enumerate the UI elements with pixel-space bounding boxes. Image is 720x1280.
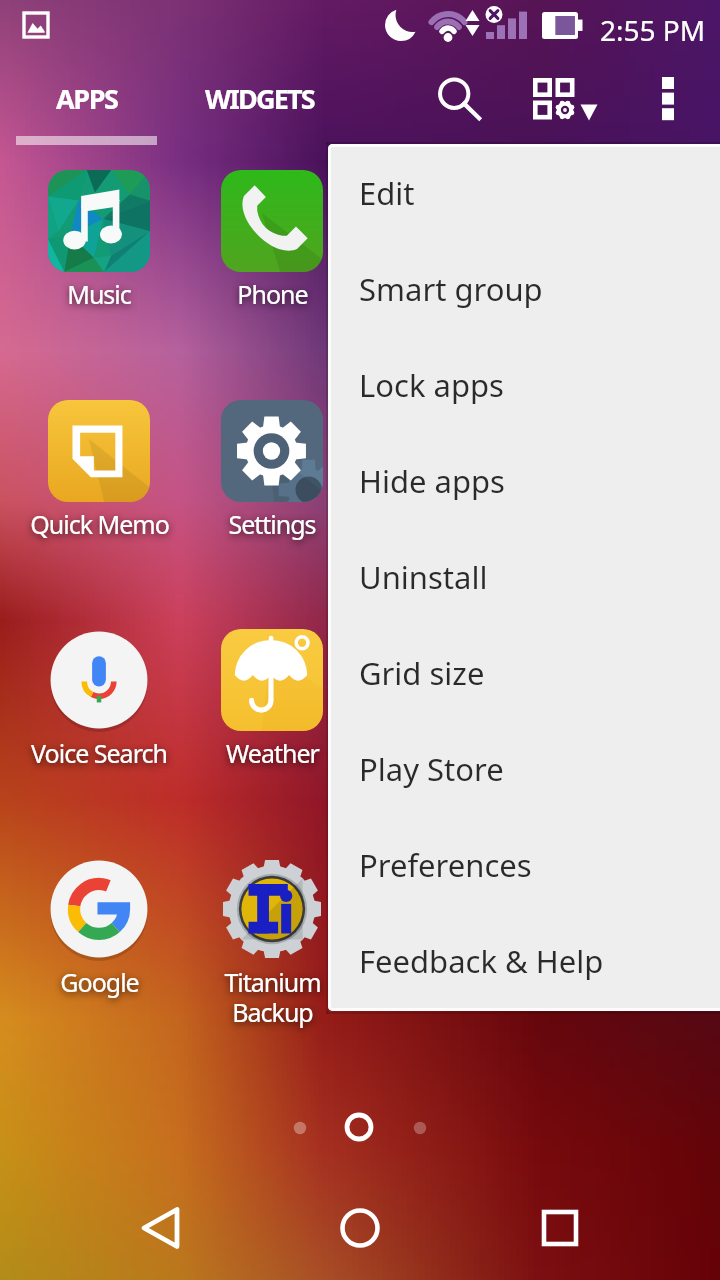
staticText: Edit [359,172,415,214]
staticText: Weather [226,736,319,770]
staticText: Google [60,965,139,999]
staticText: Preferences [359,844,532,886]
button[interactable]: Voice Search [13,619,185,794]
staticText: 2:55 PM [600,11,706,49]
staticText: Music [67,277,131,311]
button[interactable]: Back [100,1176,220,1280]
staticText: Grid size [359,652,485,694]
button[interactable]: Google [13,848,185,1023]
button[interactable]: Music [13,160,185,335]
button[interactable]: More options [635,52,705,145]
button[interactable]: Quick Memo [13,390,185,565]
staticText: Lock apps [359,364,504,406]
staticText: APPS [56,80,118,117]
button[interactable]: Grid size [505,52,615,145]
button[interactable]: Preferences [328,817,720,913]
button[interactable]: Phone [186,160,358,335]
button[interactable]: Uninstall [328,529,720,625]
staticText: Uninstall [359,556,488,598]
button[interactable]: Home [300,1176,420,1280]
button[interactable]: Smart group [328,241,720,337]
button[interactable]: Feedback & Help [328,913,720,1009]
button[interactable]: Edit [328,145,720,241]
button[interactable]: Titanium Backup [186,848,358,1023]
button[interactable]: Lock apps [328,337,720,433]
button[interactable]: Recents [500,1176,620,1280]
staticText: Hide apps [359,460,505,502]
button[interactable]: Hide apps [328,433,720,529]
staticText: Smart group [359,268,543,310]
button[interactable]: WIDGETS [180,52,338,145]
button[interactable]: APPS [16,52,157,145]
staticText: WIDGETS [205,80,314,117]
button[interactable]: Weather [186,619,358,794]
staticText: Quick Memo [30,507,169,541]
button[interactable]: Settings [186,390,358,565]
staticText: Voice Search [31,736,167,770]
button[interactable]: Search [415,52,503,145]
button[interactable]: Grid size [328,625,720,721]
staticText: Settings [228,507,316,541]
button[interactable]: Play Store [328,721,720,817]
staticText: Play Store [359,748,504,790]
staticText: Titanium Backup [224,965,321,1030]
staticText: Feedback & Help [359,940,604,982]
staticText: Phone [237,277,308,311]
